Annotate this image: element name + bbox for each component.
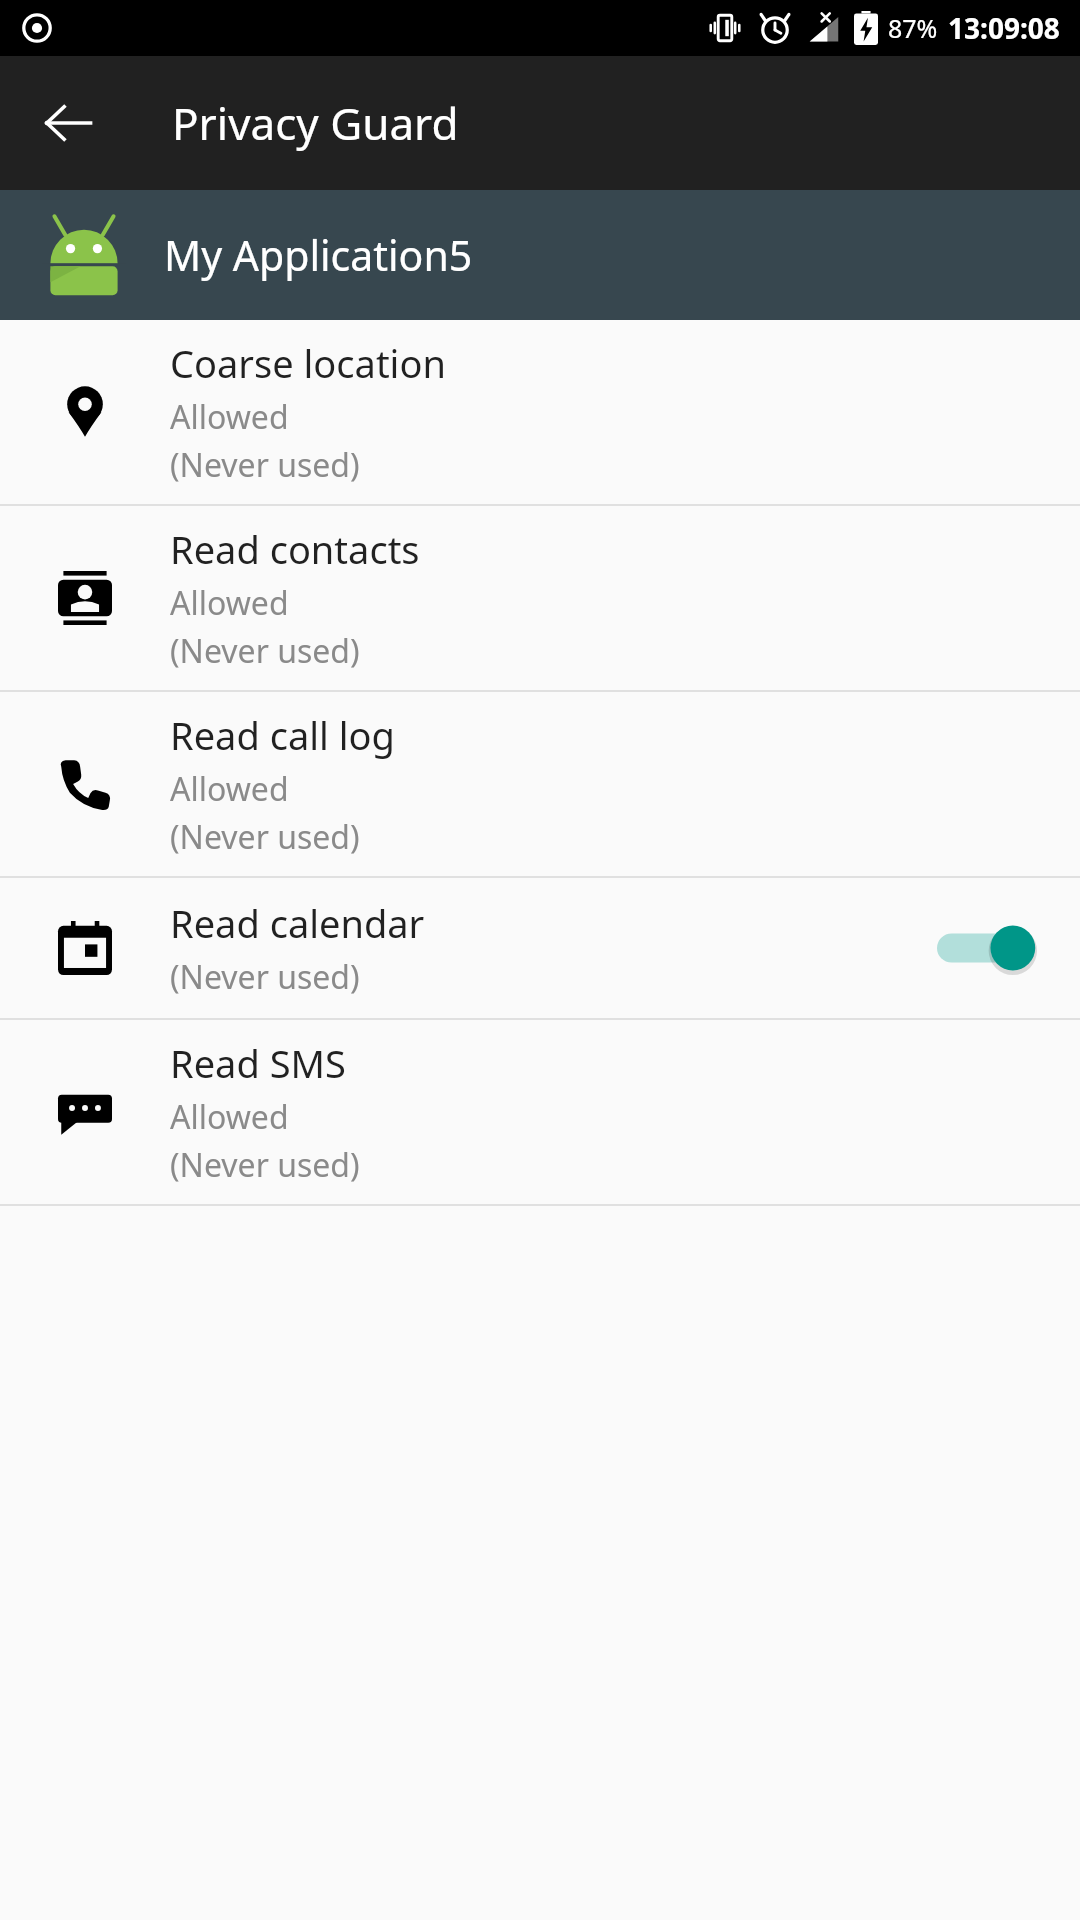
staticText: Coarse location (170, 337, 446, 389)
staticText: Allowed (170, 767, 289, 811)
staticText: (Never used) (170, 955, 360, 999)
staticText: Read contacts (170, 523, 420, 575)
button[interactable]: Toggle read calendar permission (930, 912, 1040, 984)
staticText: My Application5 (164, 227, 473, 283)
button[interactable]: Back (22, 77, 114, 169)
staticText: 13:09:08 (948, 9, 1060, 47)
staticText: 87% (888, 11, 938, 45)
staticText: Read SMS (170, 1037, 346, 1089)
staticText: (Never used) (170, 629, 360, 673)
staticText: Allowed (170, 581, 289, 625)
staticText: Read calendar (170, 897, 425, 949)
staticText: (Never used) (170, 1143, 360, 1187)
staticText: Allowed (170, 395, 289, 439)
button[interactable]: My Application5 (0, 190, 1080, 320)
button[interactable]: Coarse location (0, 320, 1080, 504)
button[interactable]: Read contacts (0, 506, 1080, 690)
staticText: Allowed (170, 1095, 289, 1139)
button[interactable]: Read SMS (0, 1020, 1080, 1204)
staticText: (Never used) (170, 443, 360, 487)
staticText: (Never used) (170, 815, 360, 859)
button[interactable]: Read call log (0, 692, 1080, 876)
button[interactable]: Read calendar (0, 878, 1080, 1018)
staticText: Privacy Guard (172, 93, 459, 153)
staticText: Read call log (170, 709, 395, 761)
